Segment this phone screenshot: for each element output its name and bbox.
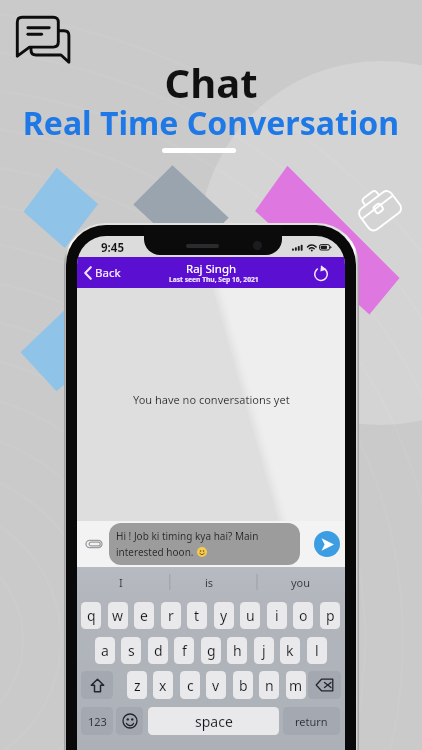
staticText: u bbox=[246, 606, 255, 625]
staticText: 9:45 bbox=[101, 240, 124, 256]
staticText: t bbox=[194, 606, 200, 625]
button[interactable]: q bbox=[81, 602, 101, 629]
staticText: p bbox=[326, 606, 335, 625]
staticText: return bbox=[295, 714, 328, 729]
button[interactable]: Refresh bbox=[310, 257, 332, 288]
button[interactable]: t bbox=[187, 602, 207, 629]
button[interactable]: return bbox=[283, 707, 340, 735]
button[interactable]: r bbox=[161, 602, 181, 629]
staticText: x bbox=[159, 676, 167, 695]
button[interactable]: y bbox=[214, 602, 234, 629]
staticText: 123 bbox=[88, 714, 107, 729]
button[interactable]: h bbox=[227, 637, 247, 664]
staticText: y bbox=[220, 606, 228, 625]
staticText: interested hoon. bbox=[116, 545, 197, 559]
staticText: Hi ! Job ki timing kya hai? Main bbox=[116, 529, 259, 543]
button[interactable]: n bbox=[259, 671, 279, 699]
button[interactable]: e bbox=[134, 602, 154, 629]
staticText: c bbox=[187, 676, 194, 695]
button[interactable]: j bbox=[254, 637, 274, 664]
staticText: o bbox=[299, 606, 308, 625]
staticText: Chat bbox=[0, 55, 422, 109]
staticText: r bbox=[168, 606, 174, 625]
button[interactable]: x bbox=[153, 671, 173, 699]
button[interactable]: g bbox=[201, 637, 221, 664]
staticText: k bbox=[286, 641, 294, 660]
staticText: you bbox=[291, 575, 311, 590]
button[interactable]: d bbox=[148, 637, 168, 664]
staticText: Back bbox=[95, 265, 121, 281]
button[interactable]: I bbox=[99, 569, 143, 595]
button[interactable]: Back bbox=[84, 257, 121, 288]
staticText: is bbox=[205, 575, 214, 590]
staticText: d bbox=[154, 641, 163, 660]
button[interactable]: k bbox=[280, 637, 300, 664]
staticText: Last seen Thu, Sep 16, 2021 bbox=[169, 275, 259, 284]
button[interactable]: Send bbox=[314, 531, 340, 557]
button[interactable]: you bbox=[279, 569, 323, 595]
staticText: i bbox=[275, 606, 279, 625]
button[interactable]: b bbox=[233, 671, 253, 699]
staticText: j bbox=[262, 641, 266, 660]
staticText: I bbox=[119, 575, 123, 590]
button[interactable]: Shift bbox=[81, 671, 113, 699]
staticText: h bbox=[233, 641, 242, 660]
button[interactable]: i bbox=[267, 602, 287, 629]
staticText: v bbox=[212, 676, 220, 695]
button[interactable]: z bbox=[127, 671, 147, 699]
button[interactable]: Backspace bbox=[308, 671, 341, 699]
button[interactable]: is bbox=[187, 569, 231, 595]
staticText: b bbox=[239, 676, 248, 695]
staticText: a bbox=[101, 641, 109, 660]
button[interactable]: o bbox=[293, 602, 313, 629]
staticText: m bbox=[289, 676, 303, 695]
staticText: q bbox=[87, 606, 96, 625]
staticText: z bbox=[134, 676, 141, 695]
button[interactable]: Attach bbox=[83, 533, 105, 555]
staticText: e bbox=[140, 606, 148, 625]
button[interactable]: v bbox=[206, 671, 226, 699]
staticText: space bbox=[195, 712, 233, 731]
button[interactable]: s bbox=[121, 637, 141, 664]
staticText: You have no conversations yet bbox=[133, 392, 290, 407]
button[interactable]: a bbox=[95, 637, 115, 664]
button[interactable]: w bbox=[108, 602, 128, 629]
button[interactable]: u bbox=[240, 602, 260, 629]
staticText: s bbox=[128, 641, 135, 660]
button[interactable]: 123 bbox=[81, 707, 113, 735]
button[interactable]: l bbox=[307, 637, 327, 664]
button[interactable]: m bbox=[286, 671, 306, 699]
button[interactable]: f bbox=[174, 637, 194, 664]
button[interactable]: Emoji bbox=[116, 707, 143, 735]
staticText: f bbox=[182, 641, 187, 660]
staticText: Real Time Conversation bbox=[0, 101, 422, 145]
button[interactable]: space bbox=[148, 707, 279, 735]
staticText: Raj Singh bbox=[186, 261, 237, 277]
staticText: l bbox=[315, 641, 319, 660]
button[interactable]: c bbox=[180, 671, 200, 699]
staticText: w bbox=[112, 606, 124, 625]
staticText: n bbox=[265, 676, 274, 695]
staticText: g bbox=[207, 641, 216, 660]
button[interactable]: p bbox=[320, 602, 340, 629]
